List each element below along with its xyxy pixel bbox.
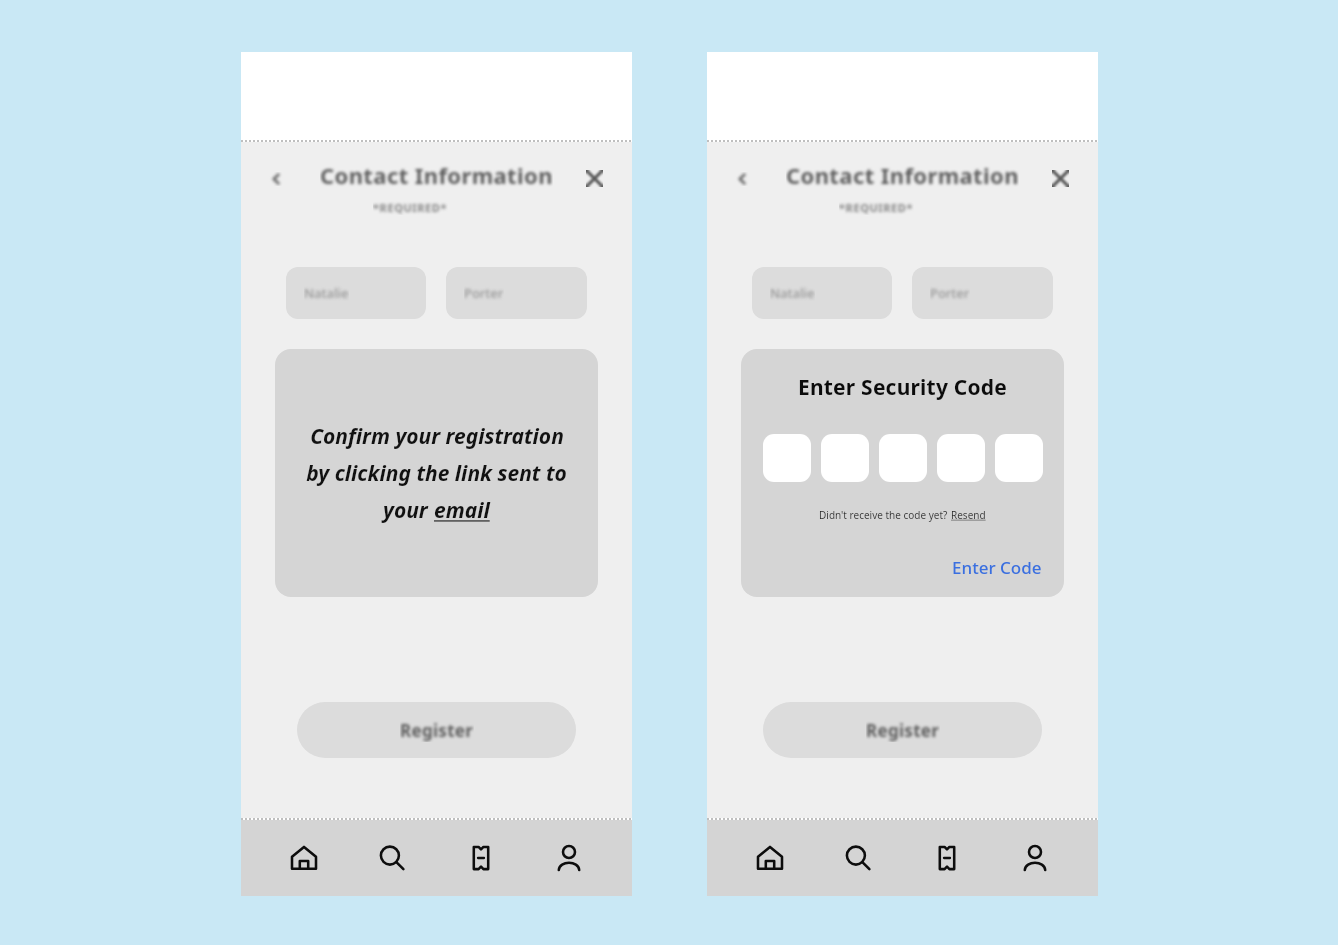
staticText: Resend <box>951 508 986 522</box>
button[interactable]: Register <box>297 702 576 758</box>
staticText: Didn't receive the code yet? <box>819 508 951 522</box>
button[interactable]: Resend <box>951 508 986 522</box>
staticText: Register <box>400 719 474 742</box>
staticText: Porter <box>464 284 504 302</box>
button[interactable]: Profile <box>1009 832 1061 884</box>
button[interactable]: Natalie <box>286 267 426 319</box>
staticText: Contact Information <box>786 160 1019 190</box>
button[interactable]: Code digit <box>879 434 927 482</box>
button[interactable]: Back <box>259 162 293 196</box>
button[interactable]: email <box>434 496 490 525</box>
button[interactable]: Search <box>366 832 418 884</box>
button[interactable]: Tickets <box>921 832 973 884</box>
button[interactable]: Code digit <box>995 434 1043 482</box>
button[interactable]: Home <box>744 832 796 884</box>
staticText: Enter Code <box>952 556 1042 579</box>
button[interactable]: Close <box>1042 160 1078 196</box>
staticText: email <box>434 496 490 525</box>
button[interactable]: Enter Code <box>952 556 1046 597</box>
staticText: *REQUIRED* <box>839 200 914 215</box>
staticText: Register <box>866 719 940 742</box>
button[interactable]: Porter <box>912 267 1053 319</box>
staticText: Enter Security Code <box>798 373 1007 402</box>
button[interactable]: Code digit <box>821 434 869 482</box>
button[interactable]: Code digit <box>937 434 985 482</box>
button[interactable]: Porter <box>446 267 587 319</box>
button[interactable]: Back <box>725 162 759 196</box>
button[interactable]: Profile <box>543 832 595 884</box>
button[interactable]: Search <box>832 832 884 884</box>
button[interactable]: Tickets <box>455 832 507 884</box>
button[interactable]: Code digit <box>763 434 811 482</box>
staticText: Porter <box>930 284 970 302</box>
button[interactable]: Close <box>576 160 612 196</box>
staticText: Confirm your registration <box>310 422 564 451</box>
staticText: by clicking the link sent to <box>306 459 567 488</box>
staticText: Natalie <box>304 284 349 302</box>
staticText: *REQUIRED* <box>373 200 448 215</box>
staticText: Contact Information <box>320 160 553 190</box>
button[interactable]: Natalie <box>752 267 892 319</box>
button[interactable]: Register <box>763 702 1042 758</box>
staticText: Natalie <box>770 284 815 302</box>
staticText: your <box>383 496 434 525</box>
button[interactable]: Home <box>278 832 330 884</box>
